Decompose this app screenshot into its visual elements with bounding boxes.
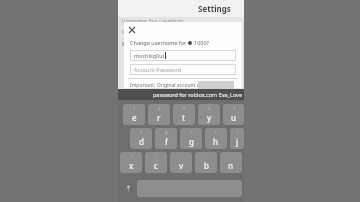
staticText: Settings [198,3,231,14]
staticText: : [206,154,208,159]
button[interactable]: & [155,128,177,149]
staticText: mochiiig0ul [134,52,165,59]
button[interactable]: Close [124,22,140,38]
button[interactable]: " [145,152,167,173]
button[interactable]: 5 [173,104,195,125]
staticText: Username: Eva_LoveMusic [122,18,184,25]
staticText: r [157,112,161,123]
staticText: e [132,112,137,123]
button[interactable]: ' [170,152,192,173]
staticText: 4 [158,106,161,111]
staticText: x [129,160,134,171]
staticText: u [231,112,237,123]
staticText: b [204,160,209,171]
button[interactable]: $ [130,128,152,149]
button[interactable]: 4 [148,104,170,125]
button[interactable]: * [180,128,202,149]
staticText: j [236,136,239,147]
staticText: c [154,160,158,171]
staticText: 1000? [194,39,209,46]
button[interactable]: 7 [223,104,244,125]
staticText: 7 [233,106,236,111]
staticText: f [165,136,168,147]
staticText: y [207,112,212,123]
staticText: d [139,136,144,147]
staticText: Account Password [134,66,182,73]
staticText: v [179,160,184,171]
button[interactable]: mochiiig0ul [130,50,236,61]
staticText: Privacy [122,41,141,48]
button[interactable]: ; [220,152,242,173]
staticText: & [165,130,168,135]
staticText: 3 [133,106,136,111]
staticText: * [190,130,193,135]
staticText: ) [237,130,239,135]
staticText: Change username for [130,39,188,46]
staticText: " [155,154,157,159]
staticText: n [228,160,234,171]
button[interactable]: Voice input [122,180,135,196]
staticText: ( [215,130,217,135]
button[interactable]: Confirm [198,81,234,91]
button[interactable]: : [195,152,217,173]
staticText: password for roblox.com Eva_Love [152,91,242,98]
button[interactable]: Account Password [130,64,236,75]
button[interactable]: ( [205,128,227,149]
staticText: $ [140,130,143,135]
staticText: ! [131,154,133,159]
button[interactable]: ) [230,128,244,149]
button[interactable]: password for roblox.com Eva_Love [118,89,244,100]
button[interactable]: ! [120,152,142,173]
button[interactable]: 6 [198,104,220,125]
staticText: h [213,136,219,147]
button[interactable]: 3 [123,104,145,125]
staticText: Password: ........ [122,29,158,36]
staticText: Important: Original account creation dat… [130,82,235,88]
staticText: 5 [183,106,186,111]
staticText: ' [181,154,182,159]
staticText: g [189,136,194,147]
staticText: t [182,112,186,123]
staticText: 6 [208,106,211,111]
staticText: ; [230,154,232,159]
